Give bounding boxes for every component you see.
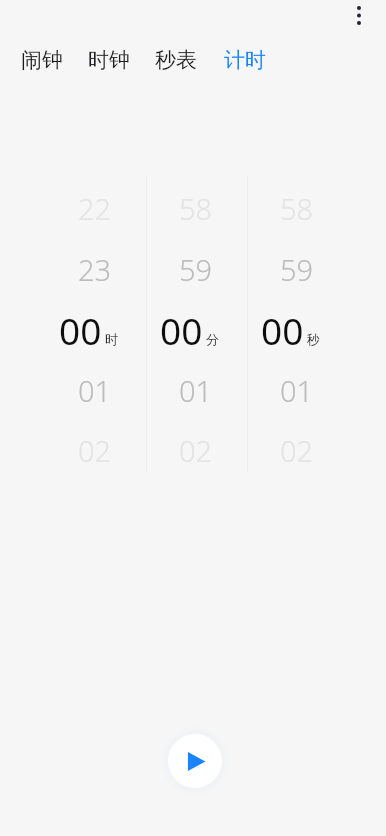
- staticText: 22: [78, 189, 112, 228]
- staticText: 时钟: [88, 47, 130, 73]
- button[interactable]: 58: [148, 186, 244, 230]
- staticText: 00: [59, 305, 102, 355]
- button[interactable]: 58: [249, 186, 345, 230]
- staticText: 59: [179, 250, 213, 289]
- button[interactable]: 时钟: [87, 44, 131, 76]
- staticText: 秒表: [155, 47, 197, 73]
- button[interactable]: 01: [249, 368, 345, 412]
- button[interactable]: Start timer: [160, 726, 230, 796]
- staticText: 计时: [224, 47, 266, 73]
- button[interactable]: 02: [249, 428, 345, 472]
- staticText: 00: [160, 305, 203, 355]
- staticText: 01: [179, 371, 213, 410]
- button[interactable]: 23: [47, 247, 143, 291]
- staticText: 58: [179, 189, 213, 228]
- staticText: 时: [105, 331, 118, 347]
- button[interactable]: 闹钟: [20, 44, 64, 76]
- button[interactable]: 00: [144, 305, 248, 355]
- button[interactable]: 22: [47, 186, 143, 230]
- button[interactable]: 59: [249, 247, 345, 291]
- button[interactable]: 02: [148, 428, 244, 472]
- button[interactable]: 01: [148, 368, 244, 412]
- staticText: 59: [280, 250, 314, 289]
- button[interactable]: More options: [343, 0, 375, 30]
- staticText: 秒: [307, 331, 320, 347]
- button[interactable]: 00: [245, 305, 349, 355]
- button[interactable]: 59: [148, 247, 244, 291]
- button[interactable]: 计时: [223, 44, 267, 76]
- staticText: 23: [78, 250, 112, 289]
- button[interactable]: 00: [43, 305, 147, 355]
- button[interactable]: 秒表: [154, 44, 198, 76]
- staticText: 闹钟: [21, 47, 63, 73]
- staticText: 00: [261, 305, 304, 355]
- staticText: 02: [78, 431, 112, 470]
- staticText: 分: [206, 331, 219, 347]
- staticText: 58: [280, 189, 314, 228]
- staticText: 02: [280, 431, 314, 470]
- staticText: 02: [179, 431, 213, 470]
- staticText: 01: [78, 371, 112, 410]
- button[interactable]: 01: [47, 368, 143, 412]
- button[interactable]: 02: [47, 428, 143, 472]
- staticText: 01: [280, 371, 314, 410]
